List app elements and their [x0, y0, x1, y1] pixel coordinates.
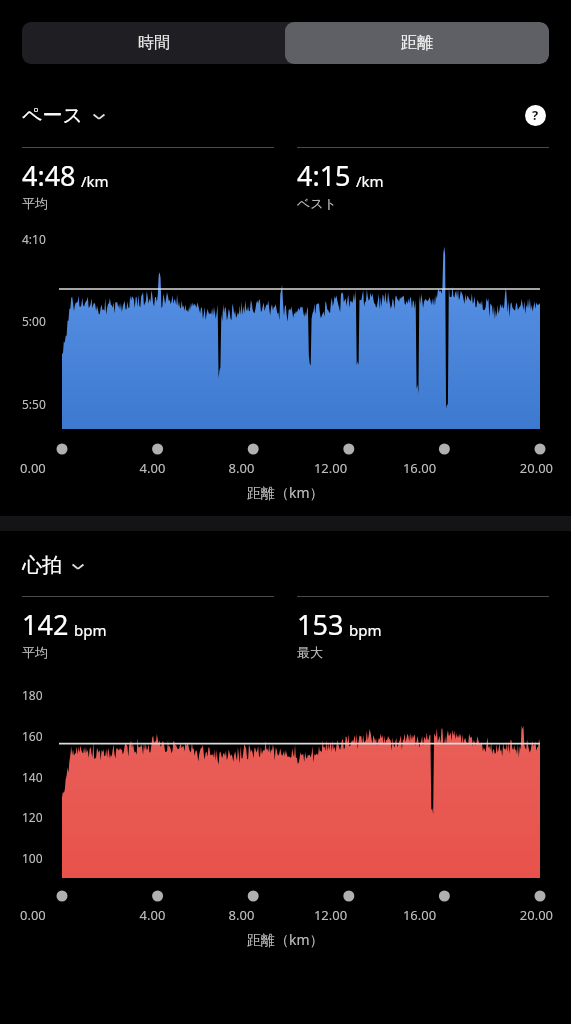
staticText: 4:10 [22, 231, 46, 247]
staticText: 0.00 [20, 459, 108, 477]
staticText: 120 [22, 809, 43, 825]
staticText: 8.00 [197, 459, 286, 477]
button[interactable]: 心拍 [22, 553, 86, 578]
staticText: 5:50 [22, 396, 46, 412]
staticText: 8.00 [197, 906, 286, 924]
staticText: 平均 [22, 644, 48, 660]
staticText: 20.00 [464, 906, 553, 924]
staticText: /km [356, 171, 384, 191]
staticText: 4.00 [108, 906, 197, 924]
staticText: 平均 [22, 195, 48, 211]
staticText: 16.00 [375, 459, 464, 477]
staticText: 20.00 [464, 459, 553, 477]
staticText: 140 [22, 769, 43, 785]
staticText: 心拍 [22, 553, 62, 578]
staticText: 距離（km） [247, 483, 324, 502]
staticText: 距離 [401, 33, 433, 53]
staticText: ベスト [297, 195, 337, 211]
staticText: 12.00 [286, 906, 375, 924]
staticText: /km [81, 171, 109, 191]
staticText: 5:00 [22, 313, 46, 329]
staticText: 153 [297, 606, 344, 643]
button[interactable]: 時間 [22, 22, 285, 64]
staticText: 180 [22, 687, 43, 703]
staticText: 4:15 [297, 157, 351, 194]
staticText: bpm [74, 620, 107, 640]
button[interactable]: ペース [22, 103, 107, 128]
staticText: ペース [22, 103, 83, 128]
staticText: 時間 [138, 33, 170, 53]
staticText: 4:48 [22, 157, 76, 194]
staticText: 100 [22, 850, 43, 866]
staticText: 160 [22, 728, 43, 744]
staticText: 最大 [297, 644, 323, 660]
staticText: 4.00 [108, 459, 197, 477]
button[interactable]: Help [521, 101, 549, 129]
staticText: 12.00 [286, 459, 375, 477]
staticText: 0.00 [20, 906, 108, 924]
staticText: ? [532, 106, 539, 124]
button[interactable]: 距離 [285, 22, 549, 64]
staticText: 距離（km） [247, 930, 324, 949]
staticText: bpm [349, 620, 382, 640]
staticText: 16.00 [375, 906, 464, 924]
staticText: 142 [22, 606, 69, 643]
